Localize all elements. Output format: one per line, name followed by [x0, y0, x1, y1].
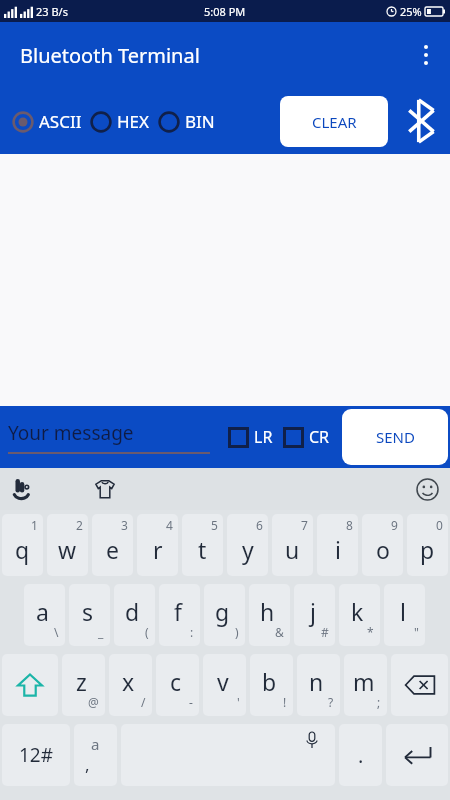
button[interactable]: z — [62, 654, 105, 716]
staticText: r — [153, 534, 163, 565]
button[interactable]: 0 — [407, 514, 448, 576]
staticText: 8 — [346, 517, 353, 533]
button[interactable]: 4 — [137, 514, 178, 576]
staticText: e — [106, 534, 119, 565]
button[interactable]: s — [69, 584, 110, 646]
button[interactable]: BIN — [154, 104, 219, 139]
button[interactable]: Emoji — [412, 474, 442, 504]
button[interactable]: j — [294, 584, 335, 646]
button[interactable]: 3 — [92, 514, 133, 576]
button[interactable]: m — [344, 654, 387, 716]
staticText: " — [414, 624, 419, 640]
button[interactable]: Backspace — [391, 654, 448, 716]
staticText: f — [174, 596, 182, 627]
staticText: t — [198, 534, 207, 565]
button[interactable]: h — [249, 584, 290, 646]
staticText: BIN — [185, 110, 215, 133]
staticText: j — [310, 596, 316, 627]
button[interactable]: v — [203, 654, 246, 716]
staticText: 4 — [166, 517, 173, 533]
staticText: CLEAR — [312, 112, 357, 132]
staticText: @ — [88, 694, 99, 710]
button[interactable]: HEX — [86, 104, 154, 139]
staticText: ASCII — [39, 110, 82, 133]
staticText: o — [376, 534, 390, 565]
staticText: 1 — [31, 517, 38, 533]
button[interactable]: Space — [121, 724, 335, 786]
staticText: # — [321, 624, 329, 640]
button[interactable]: Language — [74, 724, 117, 786]
staticText: SEND — [376, 427, 415, 447]
staticText: 5:08 PM — [204, 4, 246, 19]
staticText: c — [170, 666, 182, 697]
staticText: HEX — [117, 110, 150, 133]
button[interactable]: SEND — [342, 409, 448, 465]
button[interactable]: Numbers — [2, 724, 70, 786]
button[interactable]: l — [384, 584, 425, 646]
button[interactable]: Bluetooth — [398, 98, 444, 144]
staticText: & — [275, 624, 284, 640]
staticText: y — [242, 534, 254, 565]
button[interactable]: More options — [402, 31, 450, 79]
staticText: a — [36, 596, 49, 627]
button[interactable]: 5 — [182, 514, 223, 576]
button[interactable]: ASCII — [8, 104, 86, 139]
staticText: 9 — [391, 517, 398, 533]
button[interactable]: Period — [339, 724, 382, 786]
button[interactable]: b — [250, 654, 293, 716]
staticText: 7 — [301, 517, 308, 533]
staticText: Bluetooth Terminal — [20, 42, 200, 69]
button[interactable]: 7 — [272, 514, 313, 576]
staticText: ; — [377, 694, 381, 710]
staticText: 3 — [121, 517, 128, 533]
staticText: g — [215, 596, 230, 627]
staticText: ) — [235, 624, 239, 640]
button[interactable]: f — [159, 584, 200, 646]
staticText: ? — [328, 694, 334, 710]
button[interactable]: g — [204, 584, 245, 646]
staticText: - — [189, 694, 193, 710]
staticText: 2 — [76, 517, 83, 533]
button[interactable]: CLEAR — [280, 96, 388, 147]
button[interactable]: Enter — [386, 724, 448, 786]
button[interactable]: 8 — [317, 514, 358, 576]
staticText: m — [353, 666, 375, 697]
staticText: z — [76, 666, 87, 697]
staticText: * — [367, 624, 374, 640]
button[interactable]: 6 — [227, 514, 268, 576]
staticText: d — [125, 596, 140, 627]
staticText: i — [335, 534, 341, 565]
staticText: ( — [145, 624, 149, 640]
staticText: h — [260, 596, 275, 627]
button[interactable]: Stickers — [90, 474, 120, 504]
button[interactable]: c — [156, 654, 199, 716]
button[interactable]: 1 — [2, 514, 43, 576]
button[interactable]: LR — [226, 420, 275, 454]
staticText: 0 — [436, 517, 443, 533]
staticText: _ — [98, 624, 104, 640]
button[interactable]: n — [297, 654, 340, 716]
staticText: \ — [54, 624, 59, 640]
staticText: a — [91, 734, 100, 754]
button[interactable]: 2 — [47, 514, 88, 576]
button[interactable]: CR — [281, 420, 332, 454]
staticText: 25% — [400, 4, 422, 19]
staticText: b — [262, 666, 277, 697]
button[interactable]: x — [109, 654, 152, 716]
staticText: q — [15, 534, 30, 565]
staticText: l — [400, 596, 406, 627]
button[interactable]: d — [114, 584, 155, 646]
staticText: Your message — [8, 420, 134, 446]
button[interactable]: Shift — [2, 654, 58, 716]
staticText: u — [285, 534, 300, 565]
staticText: LR — [254, 426, 273, 448]
button[interactable]: k — [339, 584, 380, 646]
button[interactable]: a — [24, 584, 65, 646]
staticText: 23 B/s — [36, 4, 68, 19]
staticText: / — [141, 694, 146, 710]
button[interactable]: 9 — [362, 514, 403, 576]
button[interactable]: Handwriting — [8, 474, 38, 504]
staticText: 5 — [211, 517, 218, 533]
staticText: k — [351, 596, 364, 627]
staticText: s — [82, 596, 94, 627]
